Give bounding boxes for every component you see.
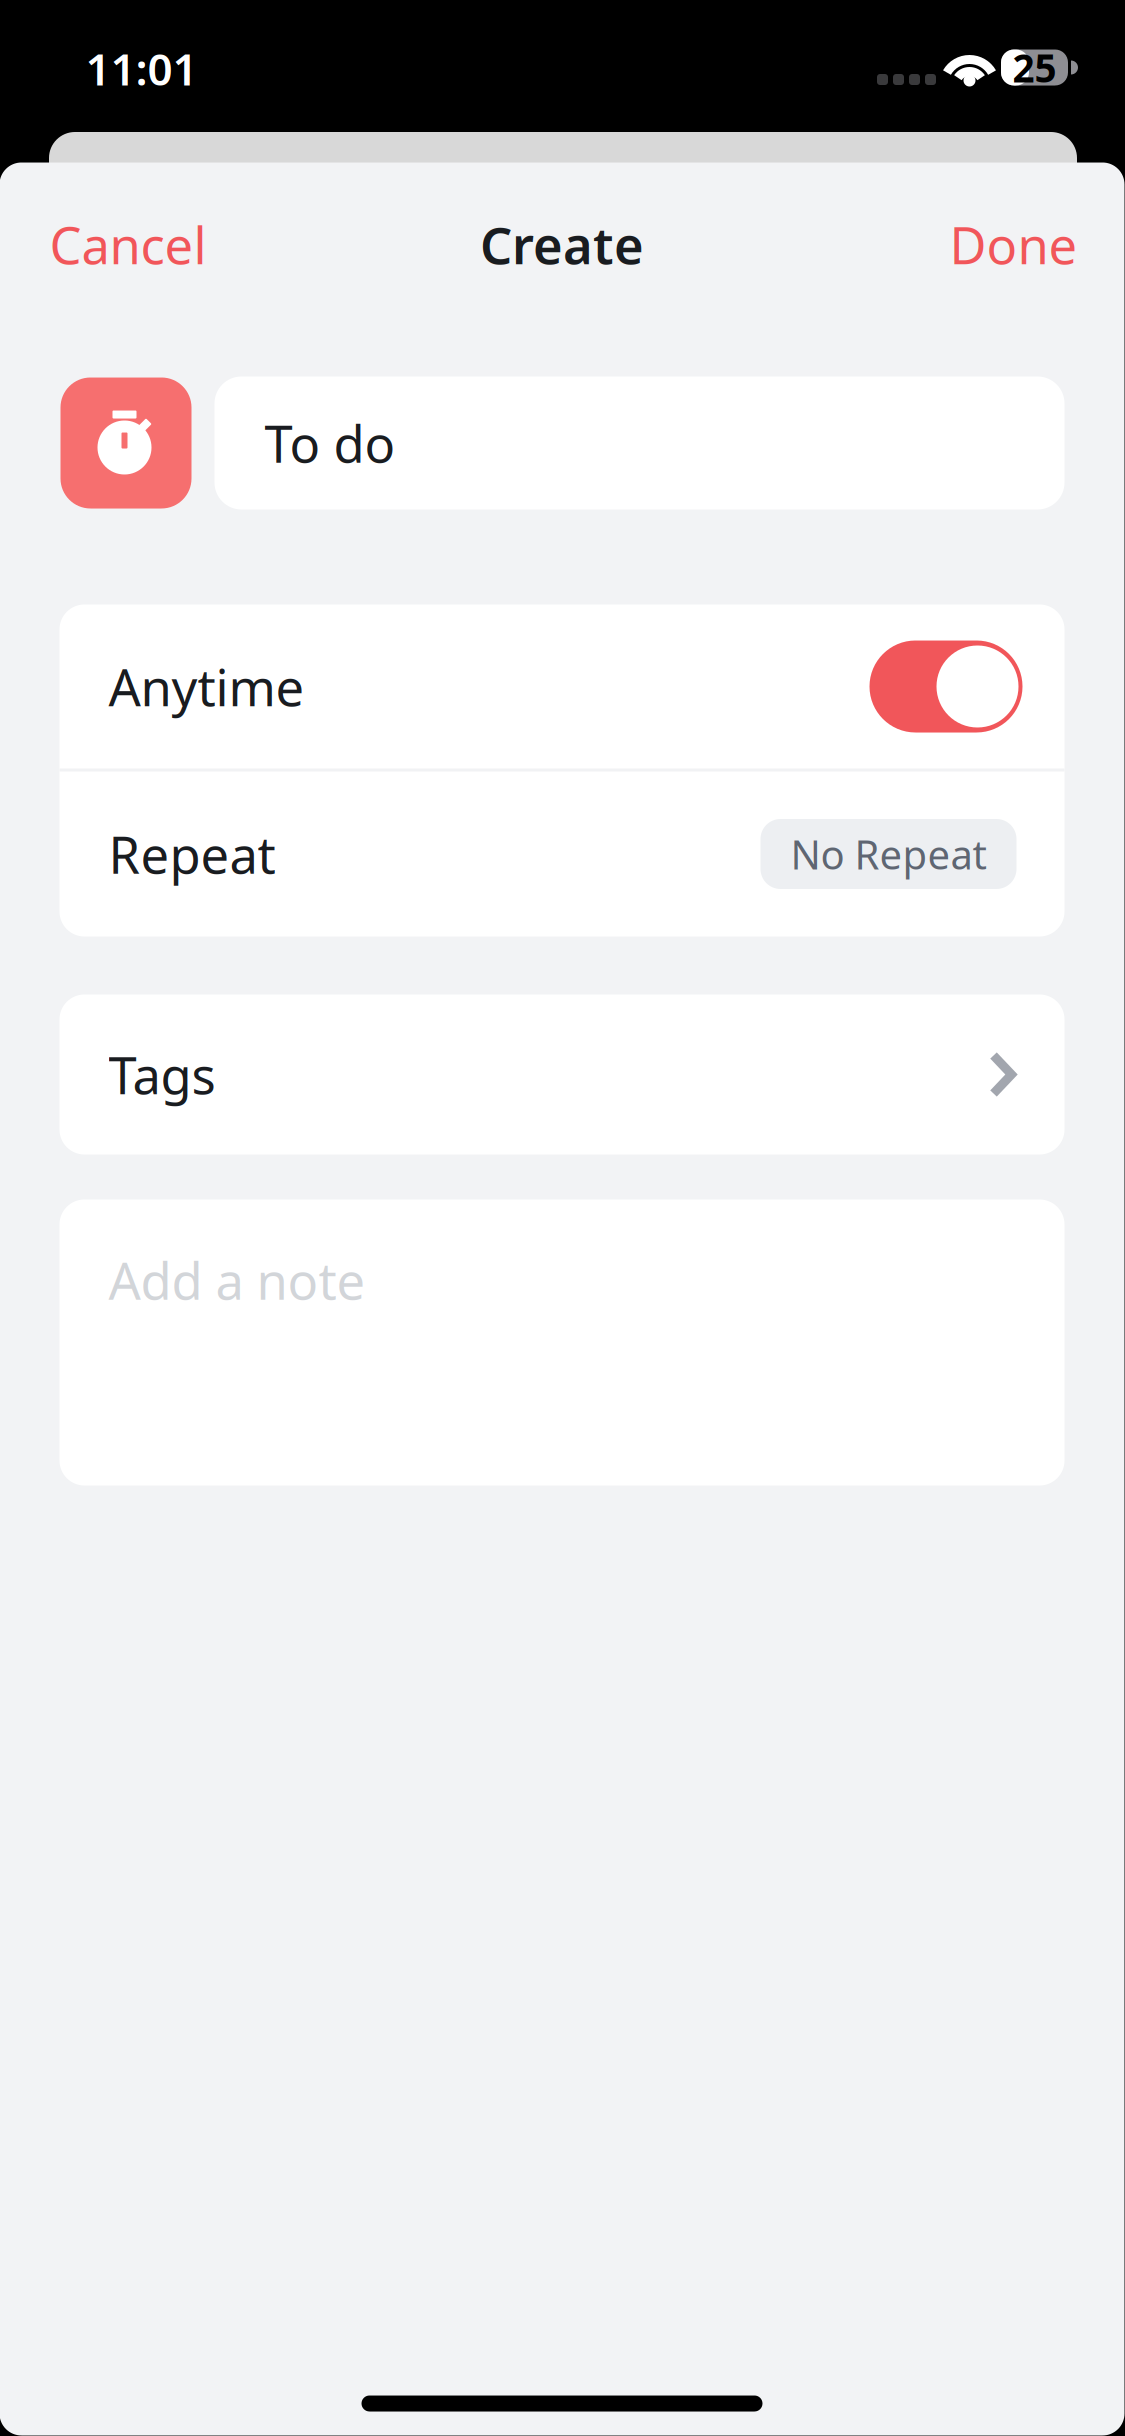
staticText: Create	[480, 211, 644, 278]
staticText: Anytime	[108, 653, 304, 720]
staticText: To do	[264, 409, 395, 477]
staticText: No Repeat	[790, 827, 986, 880]
staticText: Tags	[108, 1041, 215, 1108]
button[interactable]: Anytime	[59, 604, 1064, 768]
staticText: Done	[949, 211, 1077, 278]
staticText: 11:01	[85, 39, 197, 98]
staticText: Add a note	[108, 1246, 365, 1314]
button[interactable]: Tags	[59, 994, 1064, 1154]
staticText: 25	[1012, 42, 1056, 93]
button[interactable]: Cancel	[0, 194, 236, 294]
staticText: Repeat	[108, 820, 275, 888]
button[interactable]: Repeat	[59, 771, 1064, 936]
staticText: Cancel	[49, 211, 206, 278]
button[interactable]: Add a note	[59, 1199, 1064, 1485]
button[interactable]: Done	[919, 194, 1124, 294]
